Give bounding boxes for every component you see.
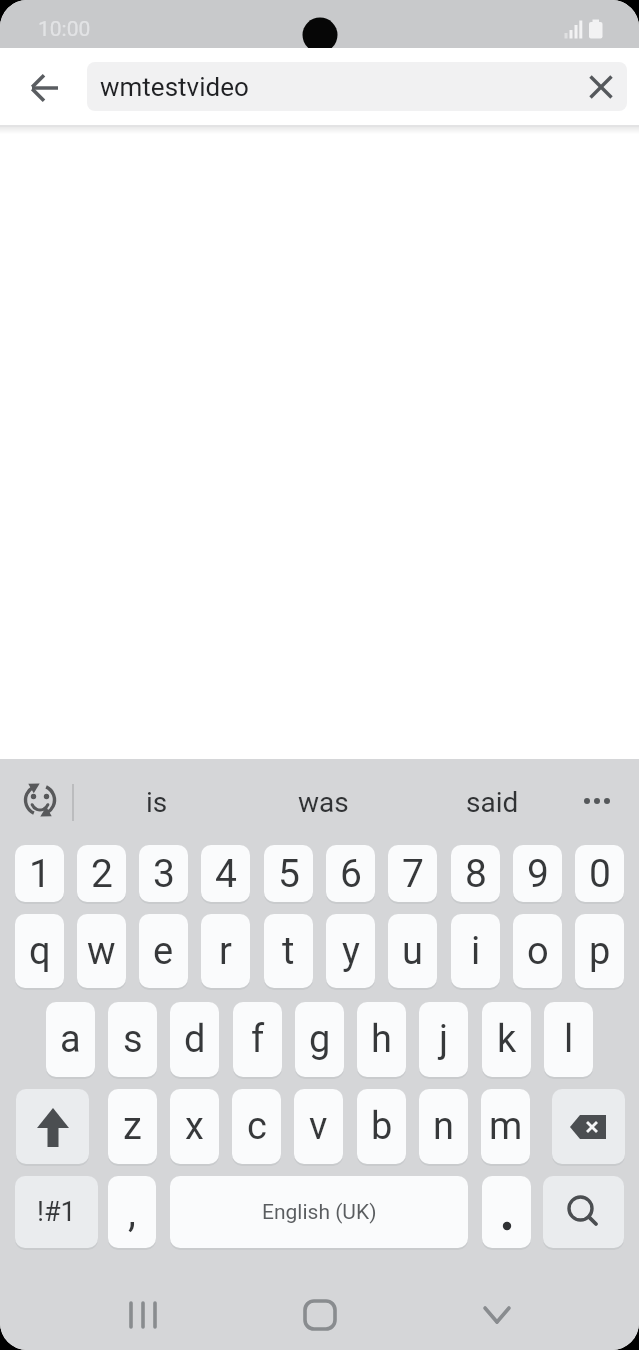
button[interactable] bbox=[552, 1089, 625, 1164]
button[interactable]: 8 bbox=[451, 845, 500, 902]
staticText: 2 bbox=[91, 851, 113, 897]
staticText: 10:00 bbox=[38, 17, 91, 42]
button[interactable]: t bbox=[264, 914, 313, 988]
button[interactable]: 6 bbox=[326, 845, 375, 902]
button[interactable]: 3 bbox=[139, 845, 188, 902]
staticText: a bbox=[60, 1017, 81, 1062]
staticText: z bbox=[123, 1104, 142, 1149]
button[interactable] bbox=[572, 777, 622, 825]
staticText: o bbox=[527, 929, 549, 974]
button[interactable] bbox=[581, 67, 621, 107]
button[interactable]: !#1 bbox=[15, 1176, 98, 1248]
staticText: u bbox=[402, 929, 423, 974]
button[interactable]: 1 bbox=[15, 845, 64, 902]
button[interactable]: g bbox=[295, 1002, 344, 1077]
staticText: 0 bbox=[589, 851, 611, 897]
staticText: r bbox=[219, 929, 232, 974]
button[interactable] bbox=[113, 1285, 173, 1345]
button[interactable]: k bbox=[482, 1002, 531, 1077]
button[interactable]: is bbox=[97, 773, 217, 831]
button[interactable]: s bbox=[108, 1002, 157, 1077]
staticText: h bbox=[371, 1017, 392, 1062]
staticText: g bbox=[309, 1017, 331, 1062]
staticText: b bbox=[371, 1104, 393, 1149]
button[interactable]: i bbox=[451, 914, 500, 988]
button[interactable]: x bbox=[170, 1089, 219, 1164]
staticText: English (UK) bbox=[262, 1200, 377, 1225]
staticText: e bbox=[153, 929, 174, 974]
staticText: x bbox=[185, 1104, 204, 1149]
staticText: 5 bbox=[278, 851, 300, 897]
button[interactable]: 9 bbox=[513, 845, 562, 902]
button[interactable]: 4 bbox=[201, 845, 250, 902]
staticText: said bbox=[466, 786, 519, 819]
button[interactable]: said bbox=[432, 773, 552, 831]
button[interactable]: d bbox=[170, 1002, 219, 1077]
staticText: 9 bbox=[527, 851, 549, 897]
button[interactable]: f bbox=[233, 1002, 282, 1077]
button[interactable] bbox=[290, 1285, 350, 1345]
button[interactable]: 5 bbox=[264, 845, 313, 902]
staticText: 4 bbox=[215, 851, 237, 897]
button[interactable]: was bbox=[263, 773, 383, 831]
button[interactable]: 7 bbox=[388, 845, 437, 902]
staticText: wmtestvideo bbox=[100, 72, 249, 102]
button[interactable]: 0 bbox=[575, 845, 624, 902]
staticText: l bbox=[564, 1017, 574, 1062]
staticText: s bbox=[123, 1017, 143, 1062]
button[interactable]: English (UK) bbox=[170, 1176, 468, 1248]
button[interactable]: , bbox=[108, 1176, 156, 1248]
staticText: 1 bbox=[29, 851, 51, 897]
button[interactable]: r bbox=[201, 914, 250, 988]
button[interactable] bbox=[543, 1176, 624, 1248]
staticText: v bbox=[309, 1104, 328, 1149]
staticText: d bbox=[184, 1017, 206, 1062]
staticText: 7 bbox=[402, 851, 424, 897]
button[interactable] bbox=[14, 774, 66, 826]
staticText: is bbox=[146, 786, 168, 819]
staticText: j bbox=[439, 1017, 449, 1062]
staticText: 3 bbox=[153, 851, 175, 897]
staticText: p bbox=[589, 929, 611, 974]
button[interactable]: 2 bbox=[77, 845, 126, 902]
staticText: t bbox=[282, 929, 295, 974]
button[interactable]: m bbox=[481, 1089, 530, 1164]
button[interactable]: o bbox=[513, 914, 562, 988]
button[interactable]: c bbox=[232, 1089, 281, 1164]
button[interactable]: z bbox=[108, 1089, 157, 1164]
staticText: c bbox=[247, 1104, 267, 1149]
button[interactable]: p bbox=[575, 914, 624, 988]
staticText: y bbox=[342, 929, 360, 974]
button[interactable]: y bbox=[326, 914, 375, 988]
button[interactable]: wmtestvideo bbox=[87, 62, 627, 111]
staticText: was bbox=[298, 786, 349, 819]
button[interactable]: w bbox=[77, 914, 126, 988]
staticText: f bbox=[251, 1017, 265, 1062]
staticText: k bbox=[497, 1017, 517, 1062]
button[interactable]: q bbox=[15, 914, 64, 988]
button[interactable] bbox=[16, 1089, 89, 1164]
button[interactable]: n bbox=[419, 1089, 468, 1164]
staticText: 6 bbox=[340, 851, 362, 897]
button[interactable]: j bbox=[419, 1002, 468, 1077]
button[interactable]: h bbox=[357, 1002, 406, 1077]
button[interactable]: v bbox=[294, 1089, 343, 1164]
button[interactable]: a bbox=[46, 1002, 95, 1077]
staticText: 8 bbox=[465, 851, 487, 897]
button[interactable]: u bbox=[388, 914, 437, 988]
staticText: m bbox=[489, 1104, 523, 1149]
button[interactable] bbox=[21, 64, 69, 112]
staticText: q bbox=[29, 929, 51, 974]
staticText: !#1 bbox=[37, 1196, 76, 1228]
staticText: i bbox=[471, 929, 481, 974]
staticText: n bbox=[433, 1104, 454, 1149]
staticText: , bbox=[128, 1189, 136, 1236]
button[interactable]: e bbox=[139, 914, 188, 988]
button[interactable] bbox=[482, 1176, 531, 1248]
button[interactable] bbox=[467, 1285, 527, 1345]
button[interactable]: b bbox=[357, 1089, 406, 1164]
button[interactable]: l bbox=[544, 1002, 593, 1077]
staticText: w bbox=[87, 929, 116, 974]
